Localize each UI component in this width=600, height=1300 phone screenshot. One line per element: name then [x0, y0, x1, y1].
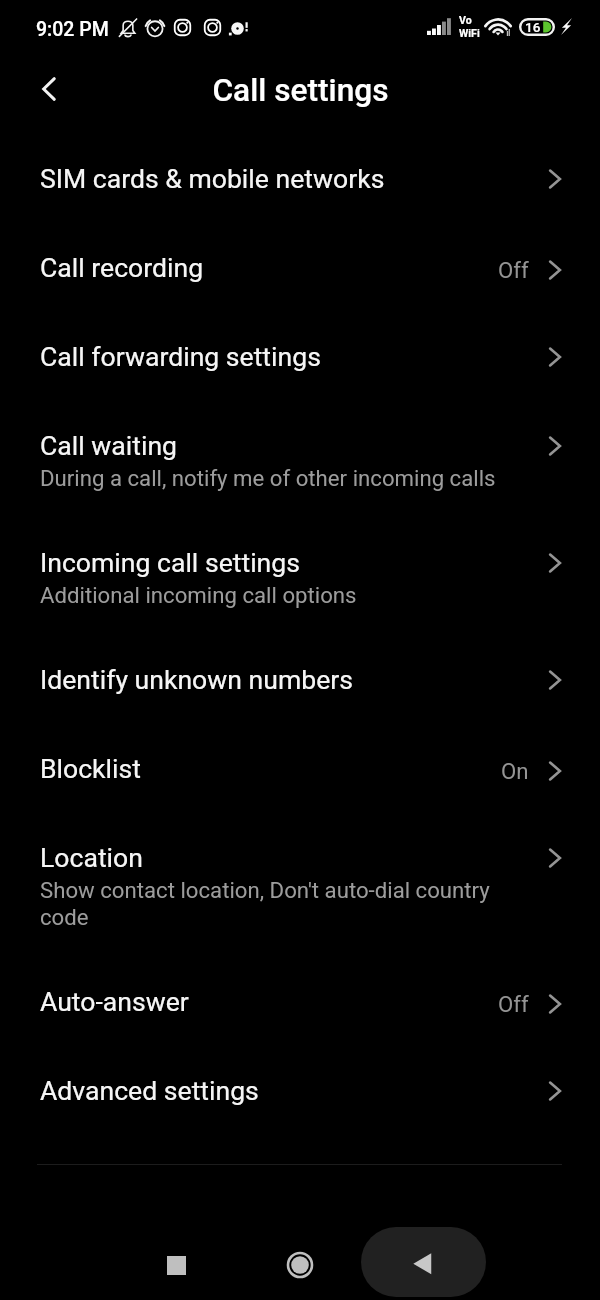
button[interactable]: Location — [0, 813, 600, 957]
button[interactable]: Recent apps — [152, 1241, 200, 1289]
staticText: Identify unknown numbers — [40, 664, 353, 695]
button[interactable]: Home — [276, 1241, 324, 1289]
staticText: Show contact location, Don't auto-dial c… — [40, 877, 500, 930]
staticText: Call forwarding settings — [40, 341, 321, 372]
staticText: Location — [40, 842, 143, 873]
staticText: WiFi — [459, 27, 480, 39]
staticText: Additional incoming call options — [40, 582, 357, 608]
button[interactable]: Call recording — [0, 223, 600, 312]
staticText: SIM cards & mobile networks — [40, 163, 385, 194]
button[interactable]: Auto-answer — [0, 957, 600, 1046]
button[interactable]: Call forwarding settings — [0, 312, 600, 401]
staticText: During a call, notify me of other incomi… — [40, 465, 496, 491]
staticText: Advanced settings — [40, 1075, 259, 1106]
staticText: Call recording — [40, 252, 204, 283]
staticText: Call settings — [212, 72, 389, 109]
button[interactable]: SIM cards & mobile networks — [0, 134, 600, 223]
staticText: 16 — [525, 19, 541, 35]
button[interactable]: Back — [361, 1227, 486, 1297]
staticText: Vo — [459, 14, 472, 26]
button[interactable]: Identify unknown numbers — [0, 635, 600, 724]
staticText: Incoming call settings — [40, 547, 300, 578]
button[interactable]: Advanced settings — [0, 1046, 600, 1135]
staticText: Auto-answer — [40, 986, 189, 1017]
staticText: On — [501, 758, 529, 784]
staticText: Blocklist — [40, 753, 141, 784]
staticText: 9:02 PM — [36, 18, 109, 41]
staticText: Off — [498, 257, 529, 283]
button[interactable]: Incoming call settings — [0, 518, 600, 635]
button[interactable]: Call waiting — [0, 401, 600, 518]
staticText: Off — [498, 991, 529, 1017]
button[interactable]: Blocklist — [0, 724, 600, 813]
button[interactable]: Back — [25, 65, 73, 113]
staticText: Call waiting — [40, 430, 178, 461]
